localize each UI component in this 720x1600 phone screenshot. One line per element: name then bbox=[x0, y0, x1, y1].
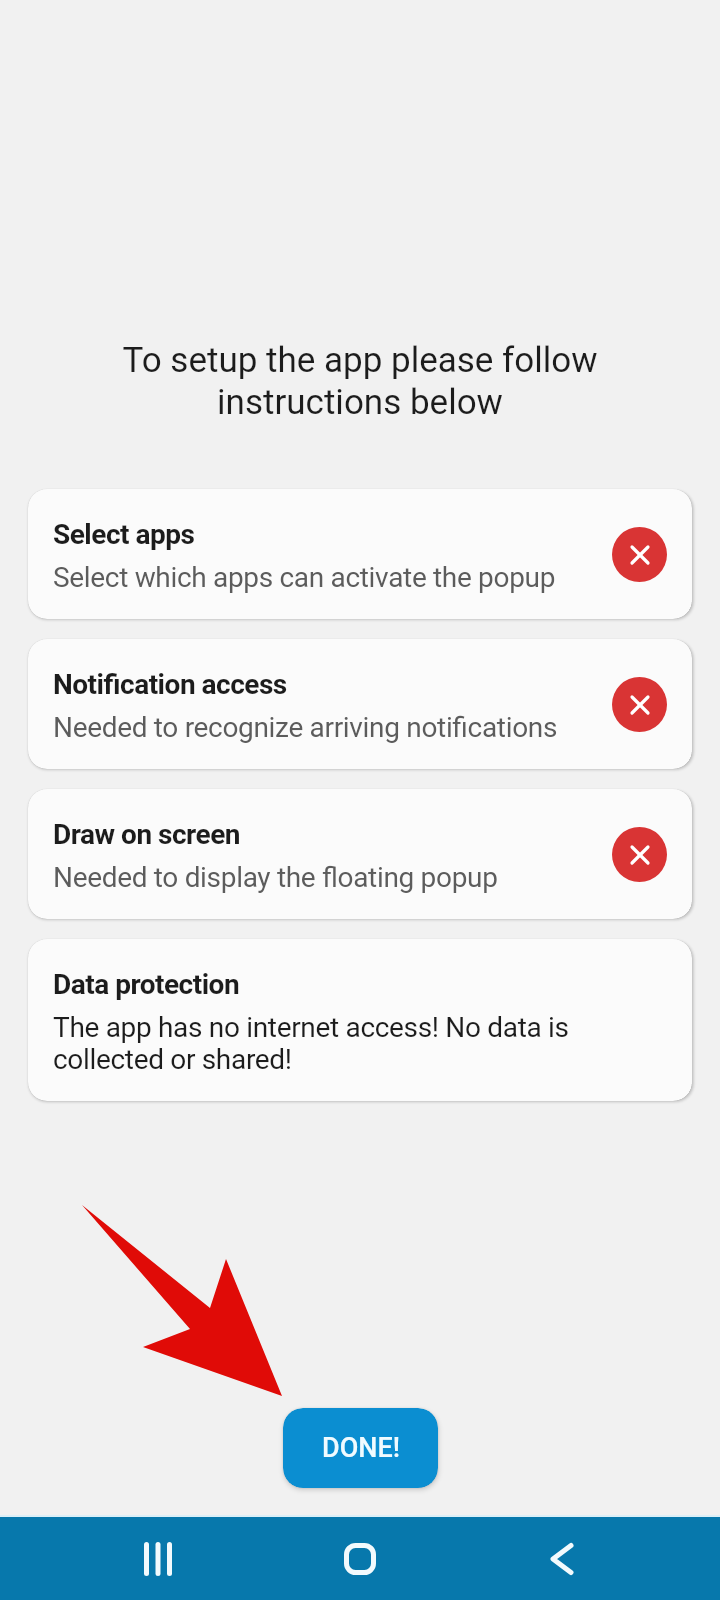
staticText: To setup the app please follow instructi… bbox=[55, 340, 665, 423]
staticText: The app has no internet access! No data … bbox=[53, 1011, 600, 1076]
staticText: DONE! bbox=[322, 1432, 400, 1464]
staticText: Data protection bbox=[53, 968, 240, 1001]
staticText: Draw on screen bbox=[53, 818, 241, 851]
button[interactable]: DONE! bbox=[283, 1408, 438, 1488]
button[interactable]: Recent apps bbox=[116, 1517, 204, 1600]
staticText: Select which apps can activate the popup bbox=[53, 561, 556, 594]
staticText: Select apps bbox=[53, 518, 195, 551]
button[interactable]: Back bbox=[521, 1517, 609, 1600]
button[interactable]: Permission not granted bbox=[612, 527, 667, 582]
staticText: Needed to display the floating popup bbox=[53, 861, 498, 894]
button[interactable]: Permission not granted bbox=[612, 827, 667, 882]
button[interactable]: Permission not granted bbox=[612, 677, 667, 732]
staticText: Notification access bbox=[53, 668, 287, 701]
button[interactable]: Data protection bbox=[28, 939, 692, 1101]
button[interactable]: Select apps bbox=[28, 489, 692, 619]
button[interactable]: Draw on screen bbox=[28, 789, 692, 919]
button[interactable]: Notification access bbox=[28, 639, 692, 769]
staticText: Needed to recognize arriving notificatio… bbox=[53, 711, 558, 744]
button[interactable]: Home bbox=[316, 1517, 404, 1600]
